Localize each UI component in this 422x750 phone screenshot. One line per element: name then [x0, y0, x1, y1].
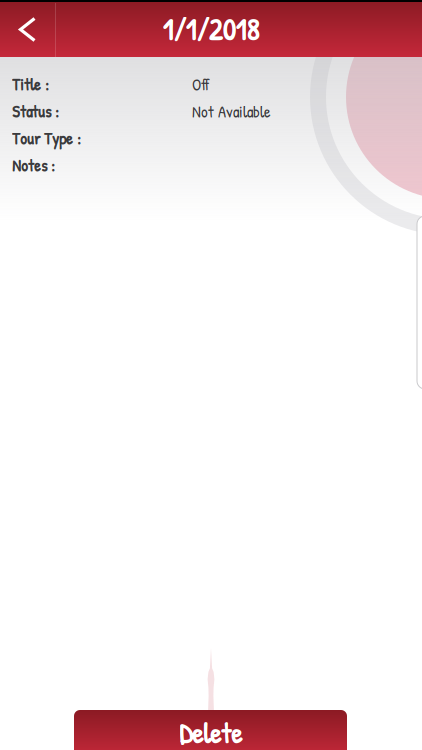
staticText: Status : [12, 100, 59, 123]
staticText: Tour Type : [12, 127, 81, 150]
staticText: Not Available [192, 100, 271, 123]
staticText: Notes : [12, 154, 55, 177]
button[interactable]: Back [0, 2, 55, 57]
button[interactable]: Delete [74, 710, 347, 750]
staticText: Off [192, 73, 210, 96]
staticText: 1/1/2018 [162, 10, 259, 49]
staticText: Delete [179, 714, 242, 750]
staticText: Title : [12, 73, 49, 96]
